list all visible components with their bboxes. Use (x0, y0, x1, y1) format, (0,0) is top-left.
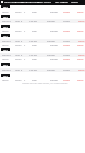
button[interactable]: Preview (50, 79, 58, 82)
button[interactable]: Lakers (2, 44, 9, 47)
button[interactable]: Warriors (2, 40, 11, 43)
button[interactable]: Celtics (15, 11, 22, 14)
button[interactable]: Watch (77, 30, 84, 33)
button[interactable]: 7 (24, 11, 26, 14)
button[interactable]: Watch (78, 20, 85, 23)
button[interactable]: NOV 4 (1, 63, 10, 66)
staticText: NOV 4 (3, 64, 8, 66)
button[interactable]: Tickets (63, 54, 70, 57)
staticText: Tickets (63, 54, 70, 57)
staticText: Heat (15, 20, 20, 23)
staticText: Lakers (2, 11, 9, 14)
button[interactable]: Tickets (63, 69, 70, 72)
button[interactable]: Heat (15, 40, 20, 43)
staticText: Standings (30, 1, 40, 4)
staticText: Preview (50, 44, 58, 47)
button[interactable]: Watch (77, 44, 84, 47)
staticText: Tickets (63, 20, 70, 23)
button[interactable]: Watch (78, 54, 85, 57)
staticText: 7 (24, 30, 26, 33)
button[interactable]: Preview (47, 40, 55, 43)
button[interactable]: Lakers (2, 30, 9, 33)
button[interactable]: Preview (47, 54, 55, 57)
staticText: Lakers (2, 44, 9, 47)
button[interactable]: Warriors (2, 69, 11, 72)
button[interactable]: Schedule (15, 1, 24, 4)
button[interactable]: Watch (78, 40, 85, 43)
button[interactable]: Watch (78, 69, 85, 72)
button[interactable]: Stats (26, 1, 31, 4)
button[interactable]: 7:30 pm (29, 40, 37, 43)
button[interactable]: Final (32, 30, 37, 33)
button[interactable]: NOV 4 (1, 15, 10, 18)
button[interactable]: NOV 4 (1, 34, 10, 37)
button[interactable]: 7 (24, 44, 26, 47)
button[interactable]: Final (32, 79, 37, 82)
staticText: Tickets (63, 30, 70, 33)
button[interactable]: Tickets (63, 44, 70, 47)
button[interactable]: Final (32, 44, 37, 47)
button[interactable]: Warriors (2, 54, 11, 57)
button[interactable]: Heat (15, 20, 20, 23)
staticText: Warriors (2, 69, 11, 72)
button[interactable]: Preview (50, 44, 58, 47)
button[interactable]: NOV 4 (1, 5, 10, 8)
button[interactable]: Watch (77, 79, 84, 82)
button[interactable]: 7 (24, 30, 26, 33)
button[interactable]: Games (4, 1, 11, 4)
button[interactable]: Preview (47, 69, 55, 72)
button[interactable]: 7 (24, 58, 26, 61)
button[interactable]: NOV 4 (1, 74, 10, 77)
button[interactable]: Lakers (2, 79, 9, 82)
staticText: 7:30 pm (29, 69, 37, 72)
staticText: NOV 4 (3, 26, 8, 28)
button[interactable]: 8 (21, 20, 23, 23)
button[interactable]: Lakers (2, 58, 9, 61)
button[interactable]: 7:30 pm (29, 69, 37, 72)
button[interactable]: 8 (21, 54, 23, 57)
button[interactable]: Tickets (63, 20, 70, 23)
staticText: NBA Vote (55, 1, 65, 4)
staticText: Final (32, 44, 37, 47)
button[interactable]: NOV 4 (1, 48, 10, 51)
button[interactable]: Teams (37, 1, 44, 4)
button[interactable]: Watch (21, 1, 27, 4)
button[interactable]: Lakers (2, 11, 9, 14)
button[interactable]: 7:30 pm (29, 54, 37, 57)
button[interactable]: Tickets (63, 79, 70, 82)
button[interactable]: Players (44, 1, 51, 4)
staticText: NOV 4 (3, 49, 8, 51)
button[interactable]: Tickets (63, 40, 70, 43)
button[interactable]: Watch (77, 11, 84, 14)
button[interactable] (1, 1, 3, 3)
button[interactable]: 7:30 pm (29, 20, 37, 23)
button[interactable]: NOV 4 (1, 25, 10, 28)
button[interactable]: Celtics (15, 58, 22, 61)
staticText: 8 (21, 69, 23, 72)
button[interactable]: Watch (77, 58, 84, 61)
staticText: Preview (47, 40, 55, 43)
button[interactable]: Preview (47, 20, 55, 23)
button[interactable]: 8 (21, 40, 23, 43)
button[interactable]: 7 (24, 79, 26, 82)
button[interactable]: Tickets (71, 1, 78, 4)
button[interactable]: Tickets (63, 58, 70, 61)
button[interactable]: Tickets (63, 30, 70, 33)
button[interactable]: Final (32, 11, 37, 14)
button[interactable]: News (11, 1, 17, 4)
button[interactable]: Preview (50, 30, 58, 33)
button[interactable]: Heat (15, 69, 20, 72)
button[interactable]: Preview (50, 11, 58, 14)
button[interactable]: Warriors (2, 20, 11, 23)
button[interactable]: Celtics (15, 30, 22, 33)
button[interactable]: Standings (30, 1, 40, 4)
button[interactable]: NBA Vote (55, 1, 65, 4)
button[interactable]: Preview (50, 58, 58, 61)
button[interactable]: 8 (21, 69, 23, 72)
button[interactable]: Heat (15, 54, 20, 57)
button[interactable]: Celtics (15, 44, 22, 47)
button[interactable]: Tickets (63, 11, 70, 14)
button[interactable]: Shop (63, 1, 68, 4)
button[interactable]: Final (32, 58, 37, 61)
button[interactable]: Celtics (15, 79, 22, 82)
